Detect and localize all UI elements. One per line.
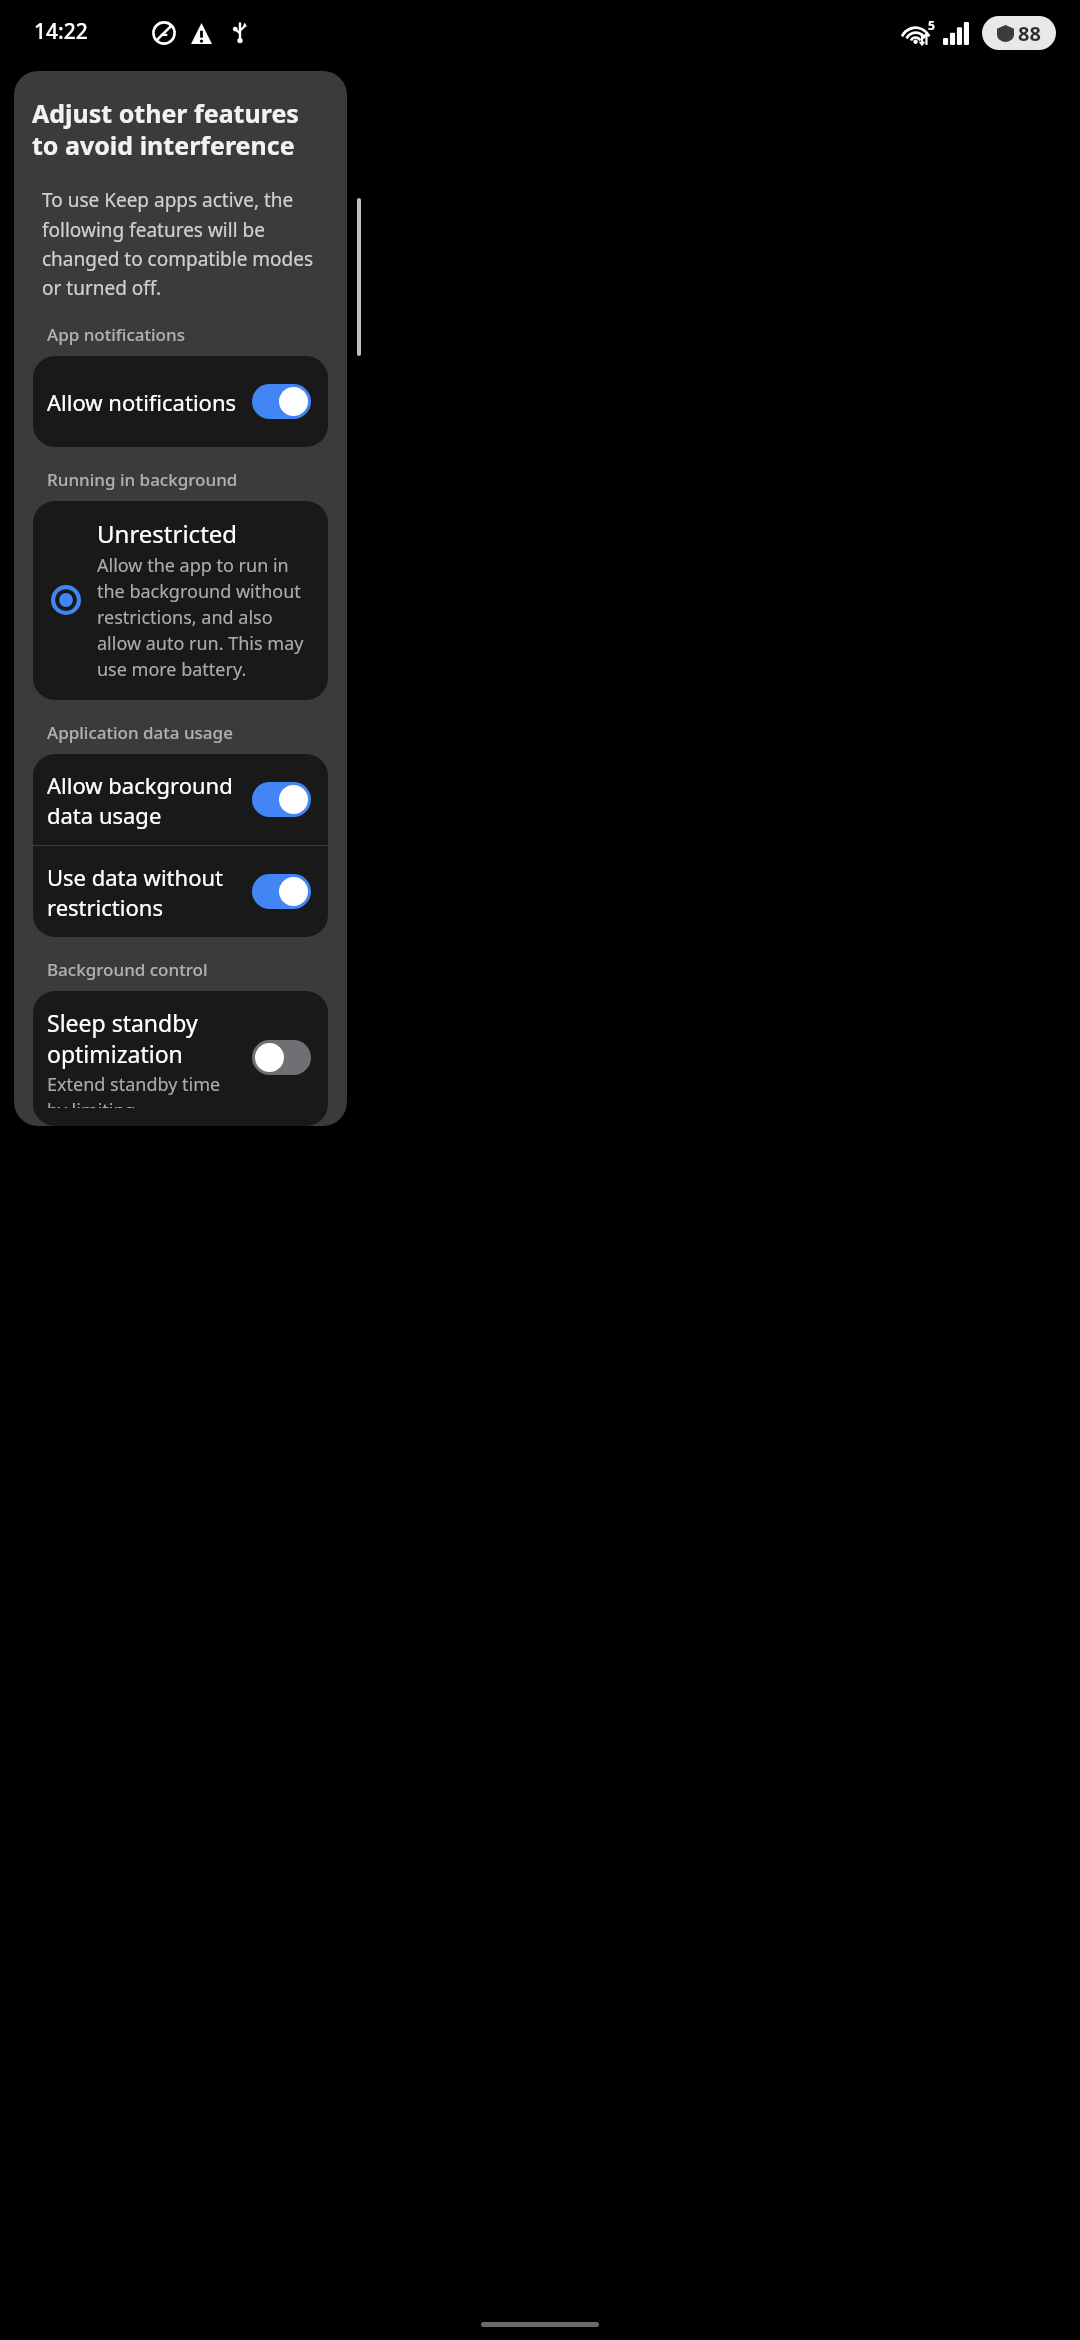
button[interactable]: Switch on bbox=[252, 874, 311, 909]
staticText: Allow background data usage bbox=[47, 770, 244, 830]
staticText: 88 bbox=[1018, 20, 1041, 47]
staticText: App notifications bbox=[47, 323, 185, 346]
staticText: 5 bbox=[928, 17, 935, 33]
staticText: 14:22 bbox=[34, 17, 88, 46]
button[interactable]: Switch off bbox=[252, 1040, 311, 1075]
staticText: Use data without restrictions bbox=[47, 862, 244, 922]
staticText: Allow the app to run in the background w… bbox=[97, 553, 314, 682]
other: Unrestricted selected bbox=[45, 579, 87, 621]
staticText: Unrestricted bbox=[97, 517, 238, 550]
staticText: Sleep standby optimization bbox=[47, 1007, 242, 1069]
button[interactable]: Allow notifications bbox=[33, 356, 328, 447]
staticText: Allow notifications bbox=[47, 387, 244, 417]
button[interactable]: Allow background data usage bbox=[33, 754, 328, 845]
button[interactable]: Sleep standby optimization bbox=[33, 991, 328, 1126]
staticText: Extend standby time by limiting performa… bbox=[47, 1072, 242, 1108]
staticText: Running in background bbox=[47, 468, 238, 491]
staticText: Adjust other features to avoid interfere… bbox=[32, 96, 325, 162]
staticText: To use Keep apps active, the following f… bbox=[42, 187, 323, 300]
button[interactable]: Unrestricted selected bbox=[33, 501, 328, 700]
staticText: Background control bbox=[47, 958, 208, 981]
button[interactable]: Use data without restrictions bbox=[33, 846, 328, 937]
button[interactable]: Switch on bbox=[252, 782, 311, 817]
staticText: Application data usage bbox=[47, 721, 233, 744]
button[interactable]: Switch on bbox=[252, 384, 311, 419]
